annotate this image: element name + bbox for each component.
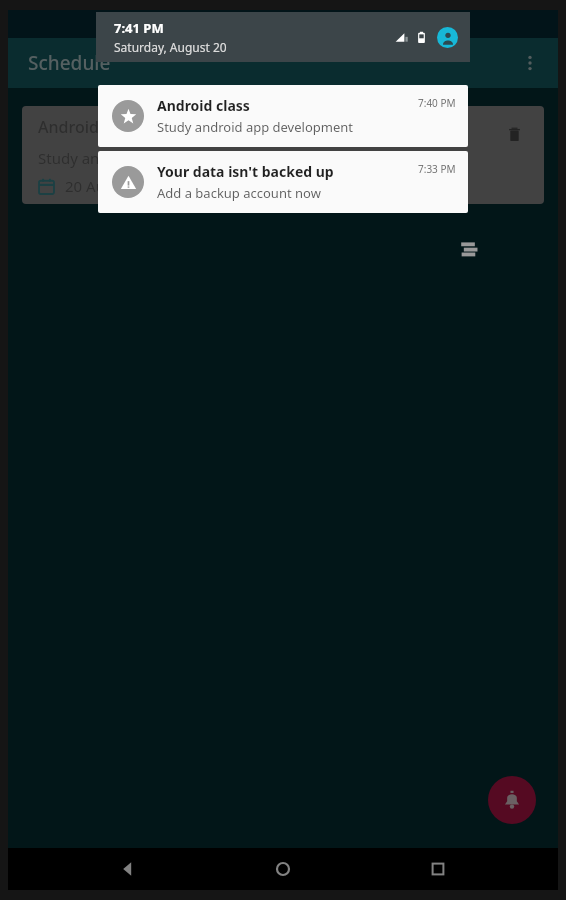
button[interactable]: Android class: [98, 85, 468, 147]
staticText: Android class: [157, 96, 250, 115]
button[interactable]: Home: [262, 848, 304, 890]
button[interactable]: More options: [508, 41, 552, 85]
button[interactable]: Sort: [457, 236, 483, 262]
staticText: Android class: [38, 116, 140, 138]
staticText: Schedule: [28, 50, 111, 76]
staticText: 7:41 PM: [114, 19, 164, 37]
button[interactable]: Add reminder: [488, 776, 536, 824]
button[interactable]: Account: [437, 27, 458, 48]
staticText: 7:33 PM: [418, 162, 456, 176]
button[interactable]: Back: [107, 848, 149, 890]
staticText: Study android app development: [157, 118, 353, 136]
staticText: Add a backup account now: [157, 184, 321, 202]
staticText: Your data isn't backed up: [157, 162, 334, 181]
button[interactable]: Recents: [417, 848, 459, 890]
button[interactable]: Your data isn't backed up: [98, 151, 468, 213]
button[interactable]: Android class: [22, 106, 544, 204]
staticText: 20 August 2022: [65, 176, 175, 196]
staticText: Saturday, August 20: [114, 39, 227, 55]
staticText: 7:40 PM: [418, 96, 456, 110]
staticText: Study android app development: [38, 148, 265, 168]
button[interactable]: Delete: [494, 114, 534, 154]
